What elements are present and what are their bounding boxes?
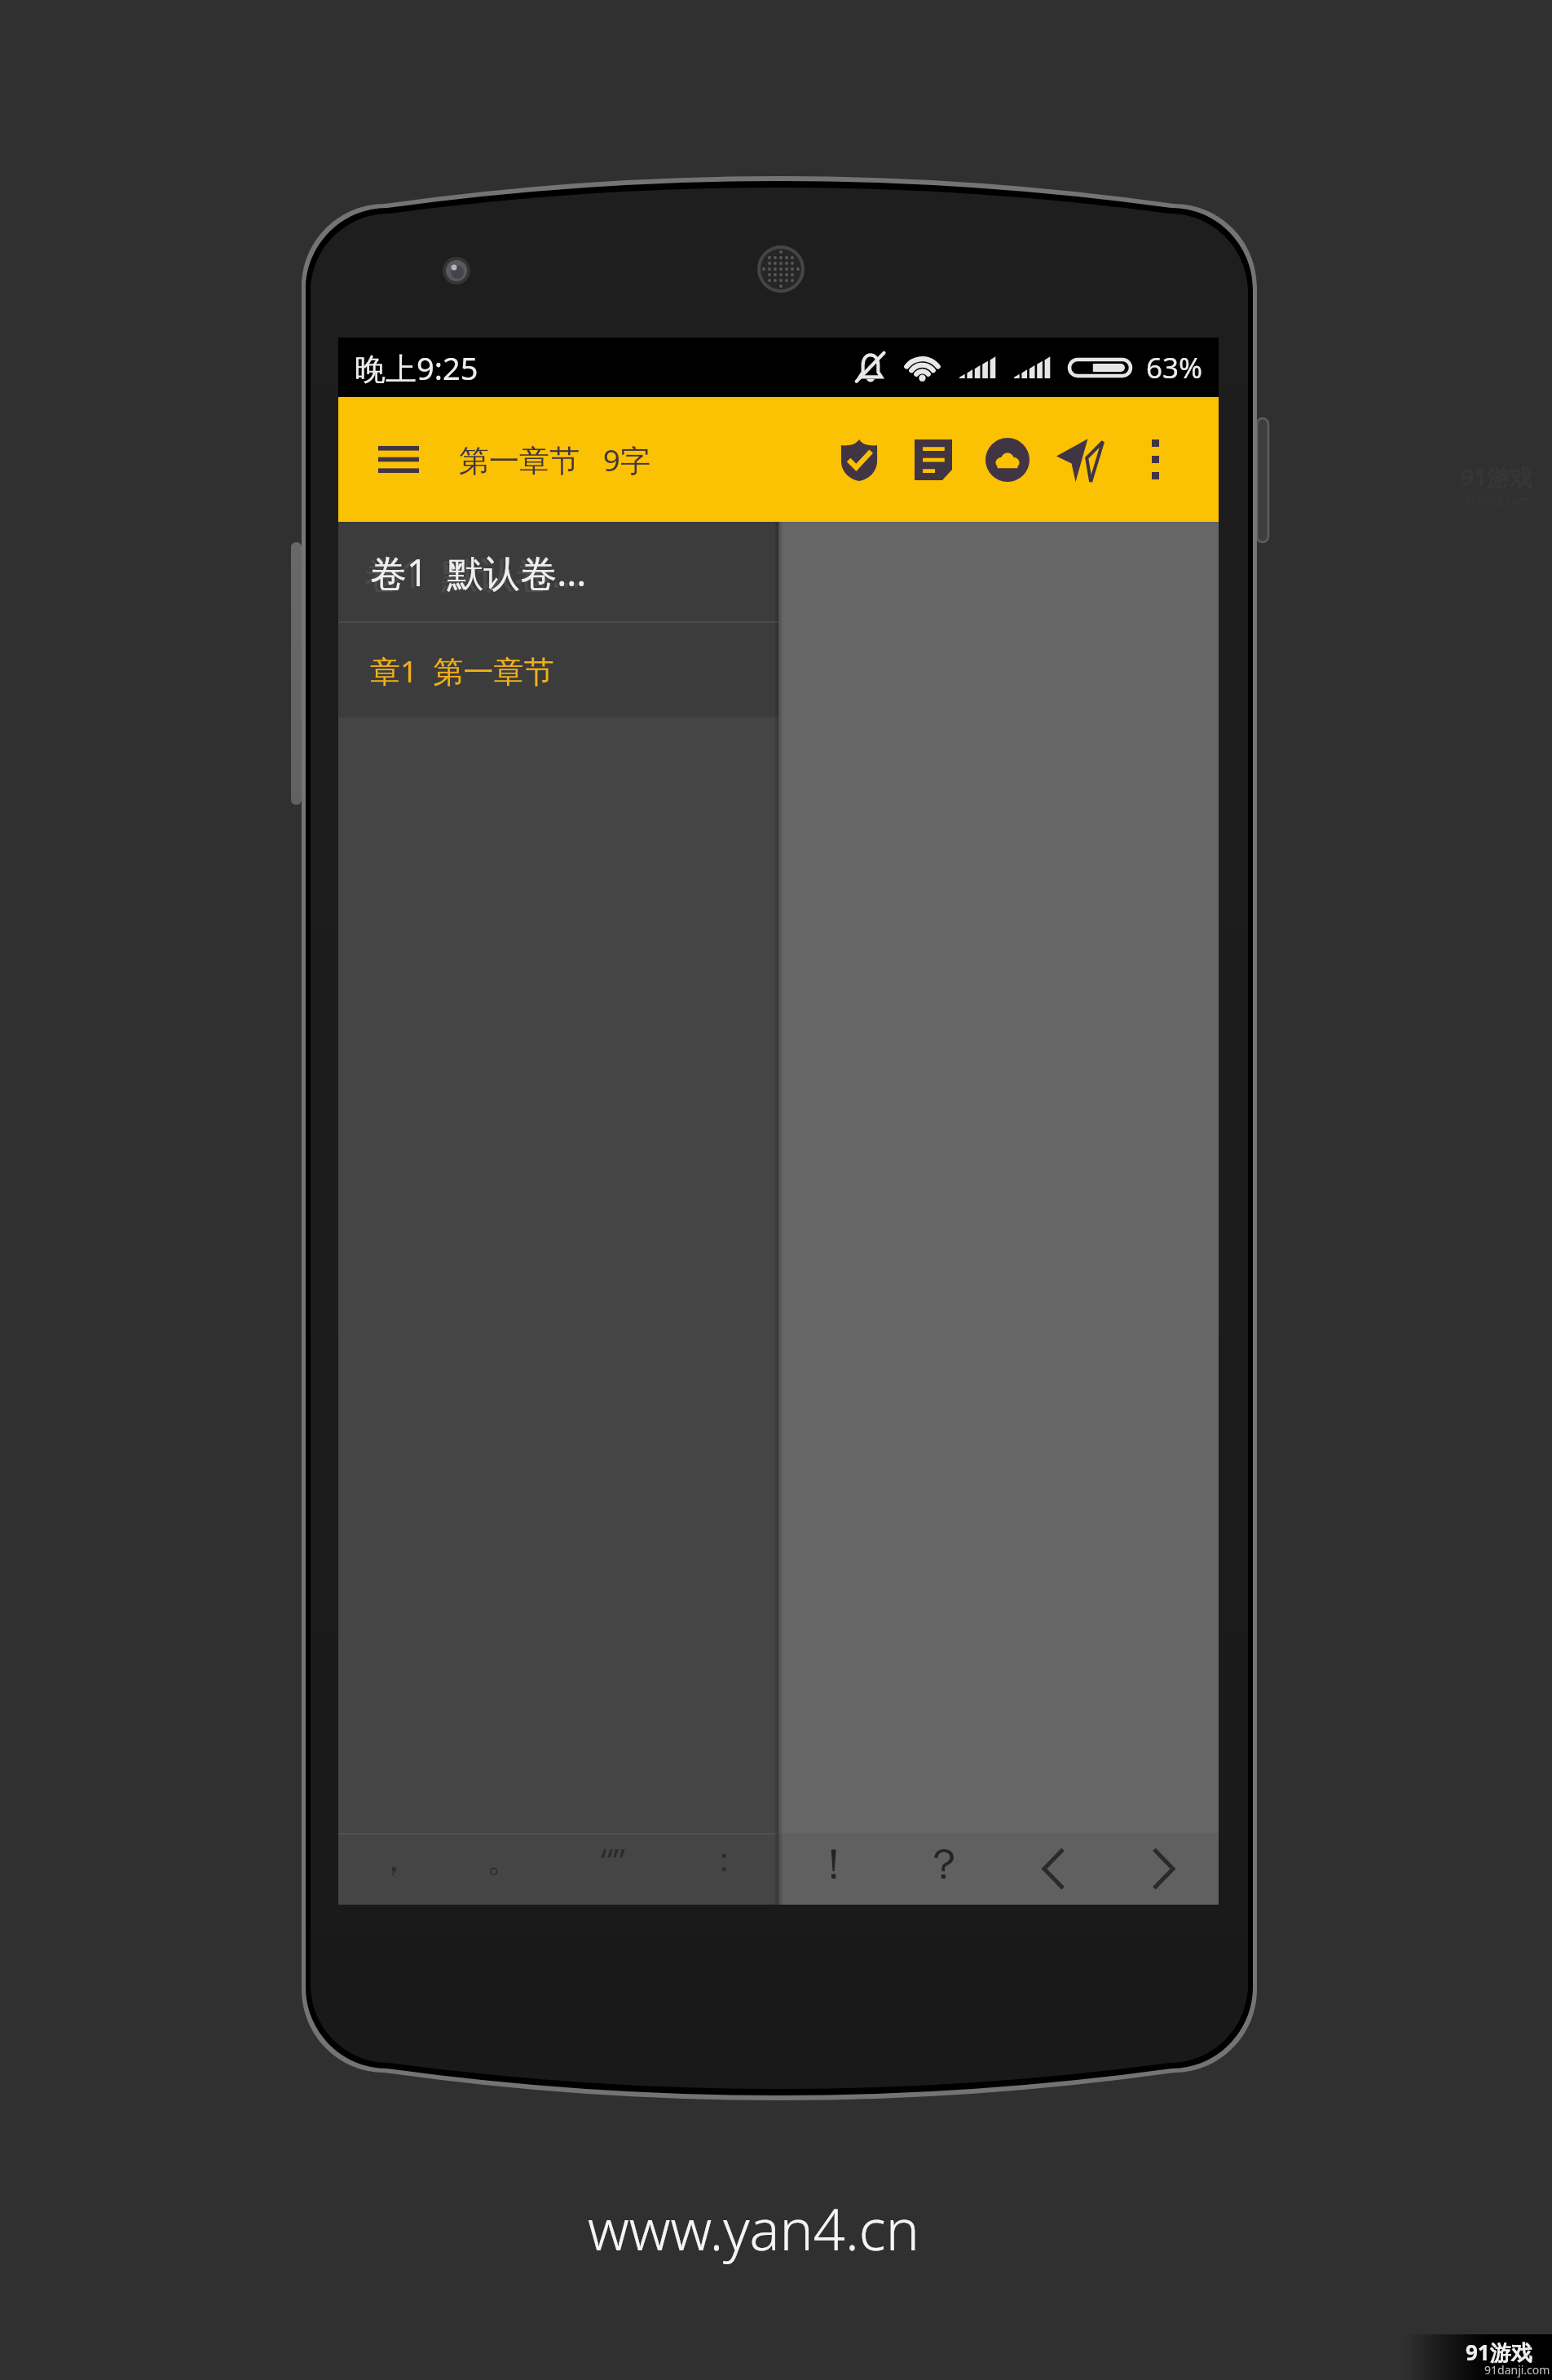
button[interactable]: Send	[1044, 397, 1118, 522]
staticText: 91游戏	[1466, 2338, 1532, 2367]
staticText: 卷1 默认卷...	[370, 547, 587, 597]
button[interactable]: More options	[1118, 397, 1193, 522]
button[interactable]: ，	[338, 1835, 448, 1905]
staticText: 第一章节 9字	[459, 439, 651, 480]
staticText: “”	[601, 1837, 626, 1883]
staticText: 卷1 默认卷...	[364, 549, 581, 598]
staticText: ！	[813, 1838, 855, 1892]
staticText: 章1 第一章节	[370, 650, 554, 691]
staticText: ：	[707, 1839, 741, 1882]
button[interactable]: Outline	[896, 397, 970, 522]
staticText: 63%	[1146, 348, 1203, 387]
button[interactable]: Cloud sync	[970, 397, 1044, 522]
button[interactable]: Next	[1109, 1833, 1219, 1905]
button[interactable]: 章1 第一章节	[338, 623, 778, 718]
staticText: ？	[923, 1838, 965, 1892]
button[interactable]: Protect	[822, 397, 896, 522]
button[interactable]: ！	[778, 1833, 888, 1905]
staticText: 晚上9:25	[355, 347, 478, 389]
button[interactable]: ？	[888, 1833, 999, 1905]
staticText: www.yan4.cn	[588, 2190, 919, 2267]
button[interactable]: Open navigation drawer	[363, 397, 434, 522]
staticText: 91danji.com	[1484, 2362, 1550, 2378]
button[interactable]: 卷1 默认卷...	[338, 522, 778, 621]
button[interactable]: Previous	[999, 1833, 1109, 1905]
